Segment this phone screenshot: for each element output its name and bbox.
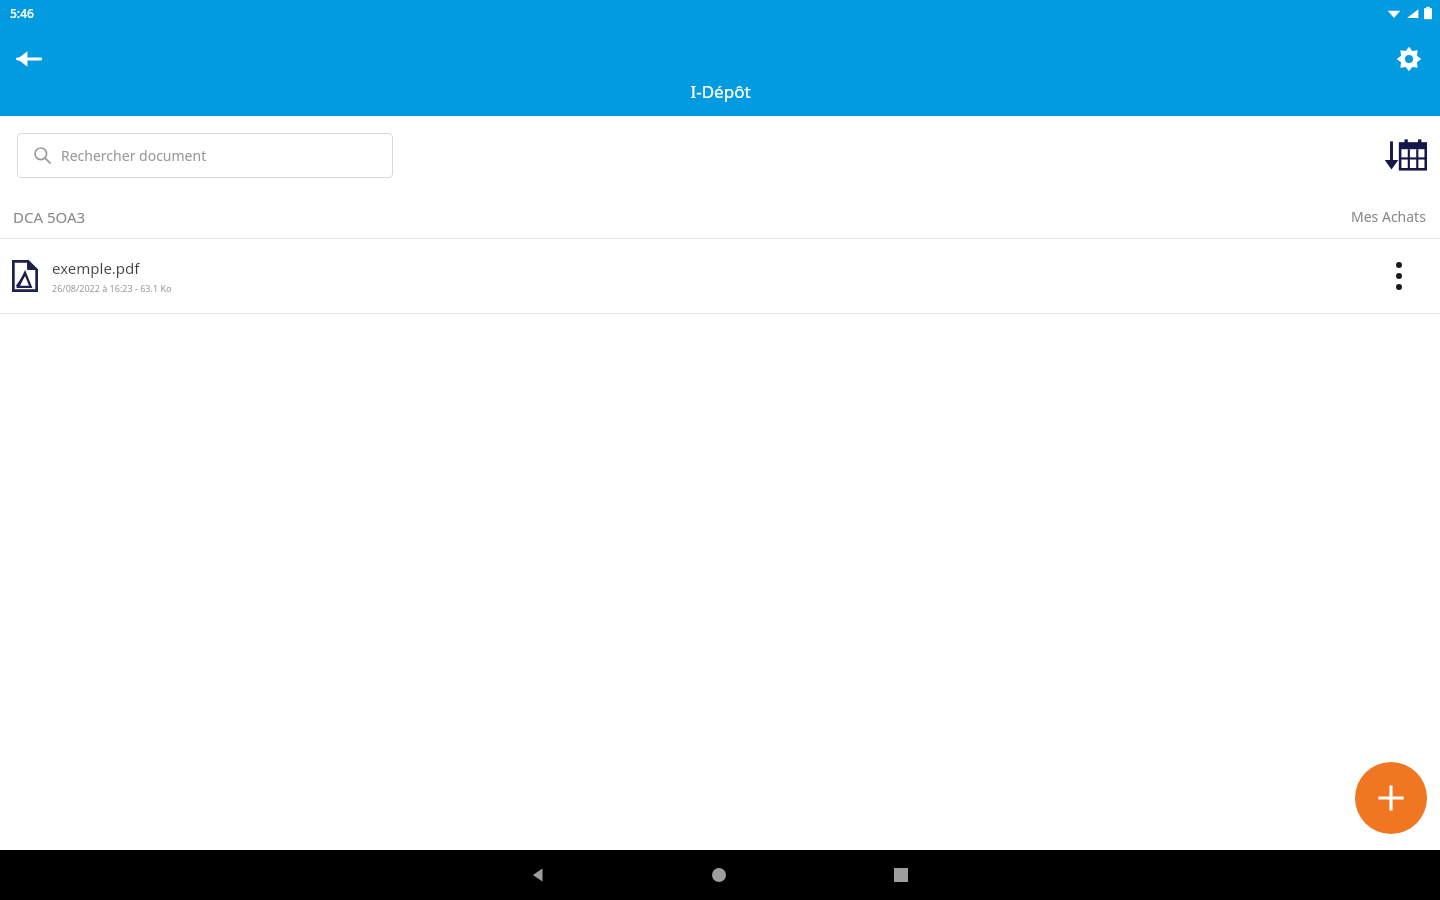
staticText: Mes Achats bbox=[1351, 207, 1426, 226]
button[interactable]: Retour bbox=[4, 34, 54, 84]
button[interactable]: exemple.pdf bbox=[0, 239, 1440, 313]
button[interactable]: Rechercher document bbox=[17, 133, 393, 178]
button[interactable]: Applications récentes bbox=[878, 852, 924, 898]
button[interactable]: Ajouter un document bbox=[1355, 762, 1427, 834]
button[interactable]: Retour bbox=[515, 852, 561, 898]
button[interactable]: Trier par date bbox=[1382, 131, 1430, 179]
staticText: I-Dépôt bbox=[690, 80, 751, 103]
staticText: 26/08/2022 à 16:23 - 63.1 Ko bbox=[52, 282, 172, 294]
staticText: 5:46 bbox=[10, 5, 34, 21]
button[interactable]: Plus d'options bbox=[1372, 249, 1426, 303]
staticText: Rechercher document bbox=[61, 146, 207, 165]
staticText: DCA 5OA3 bbox=[13, 207, 86, 227]
staticText: exemple.pdf bbox=[52, 258, 140, 278]
button[interactable]: Paramètres bbox=[1384, 34, 1434, 84]
button[interactable]: Accueil bbox=[696, 852, 742, 898]
